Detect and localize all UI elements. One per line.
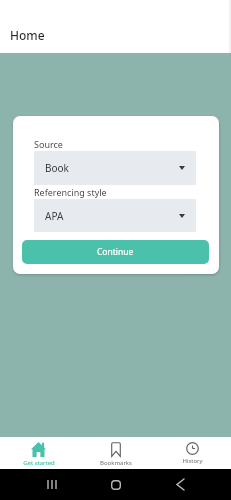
button[interactable]: Book	[34, 151, 196, 185]
staticText: Referencing style	[34, 186, 107, 198]
button[interactable]: Recent apps	[37, 472, 67, 497]
button[interactable]: Back	[166, 472, 196, 497]
button[interactable]: Continue	[22, 240, 209, 264]
staticText: Get started	[23, 459, 55, 467]
button[interactable]: APA	[34, 199, 196, 232]
button[interactable]: Home	[101, 472, 131, 497]
staticText: History	[182, 457, 203, 465]
staticText: Book	[45, 161, 69, 175]
staticText: Continue	[97, 246, 134, 258]
button[interactable]: Get started	[0, 437, 77, 469]
staticText: APA	[45, 209, 64, 223]
button[interactable]: History	[154, 437, 231, 469]
button[interactable]: Bookmarks	[77, 437, 154, 469]
staticText: Home	[10, 27, 45, 43]
staticText: Bookmarks	[100, 459, 132, 467]
staticText: Source	[34, 138, 63, 150]
